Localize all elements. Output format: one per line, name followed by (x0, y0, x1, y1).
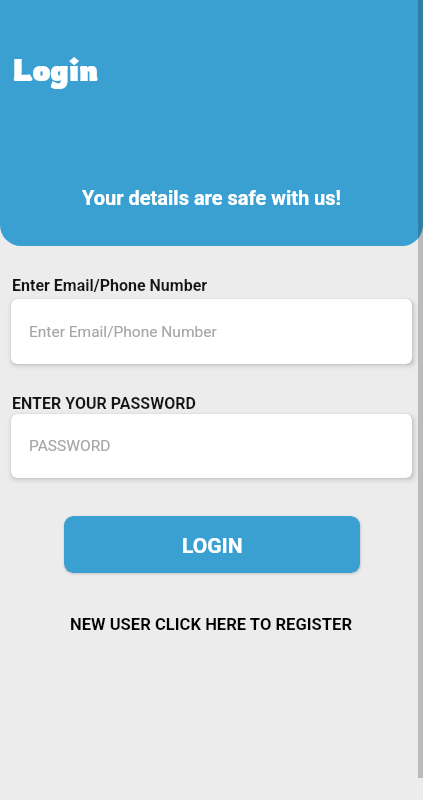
button[interactable]: NEW USER CLICK HERE TO REGISTER (70, 615, 353, 634)
staticText: Enter Email/Phone Number (12, 276, 208, 295)
staticText: PASSWORD (29, 437, 111, 455)
button[interactable]: PASSWORD (11, 414, 412, 478)
staticText: ENTER YOUR PASSWORD (12, 394, 196, 413)
staticText: Enter Email/Phone Number (29, 323, 217, 341)
staticText: Login (12, 50, 99, 89)
button[interactable]: LOGIN (64, 516, 360, 573)
button[interactable]: Enter Email/Phone Number (11, 299, 412, 364)
staticText: LOGIN (182, 534, 243, 559)
staticText: NEW USER CLICK HERE TO REGISTER (70, 615, 353, 634)
staticText: Your details are safe with us! (0, 186, 423, 209)
